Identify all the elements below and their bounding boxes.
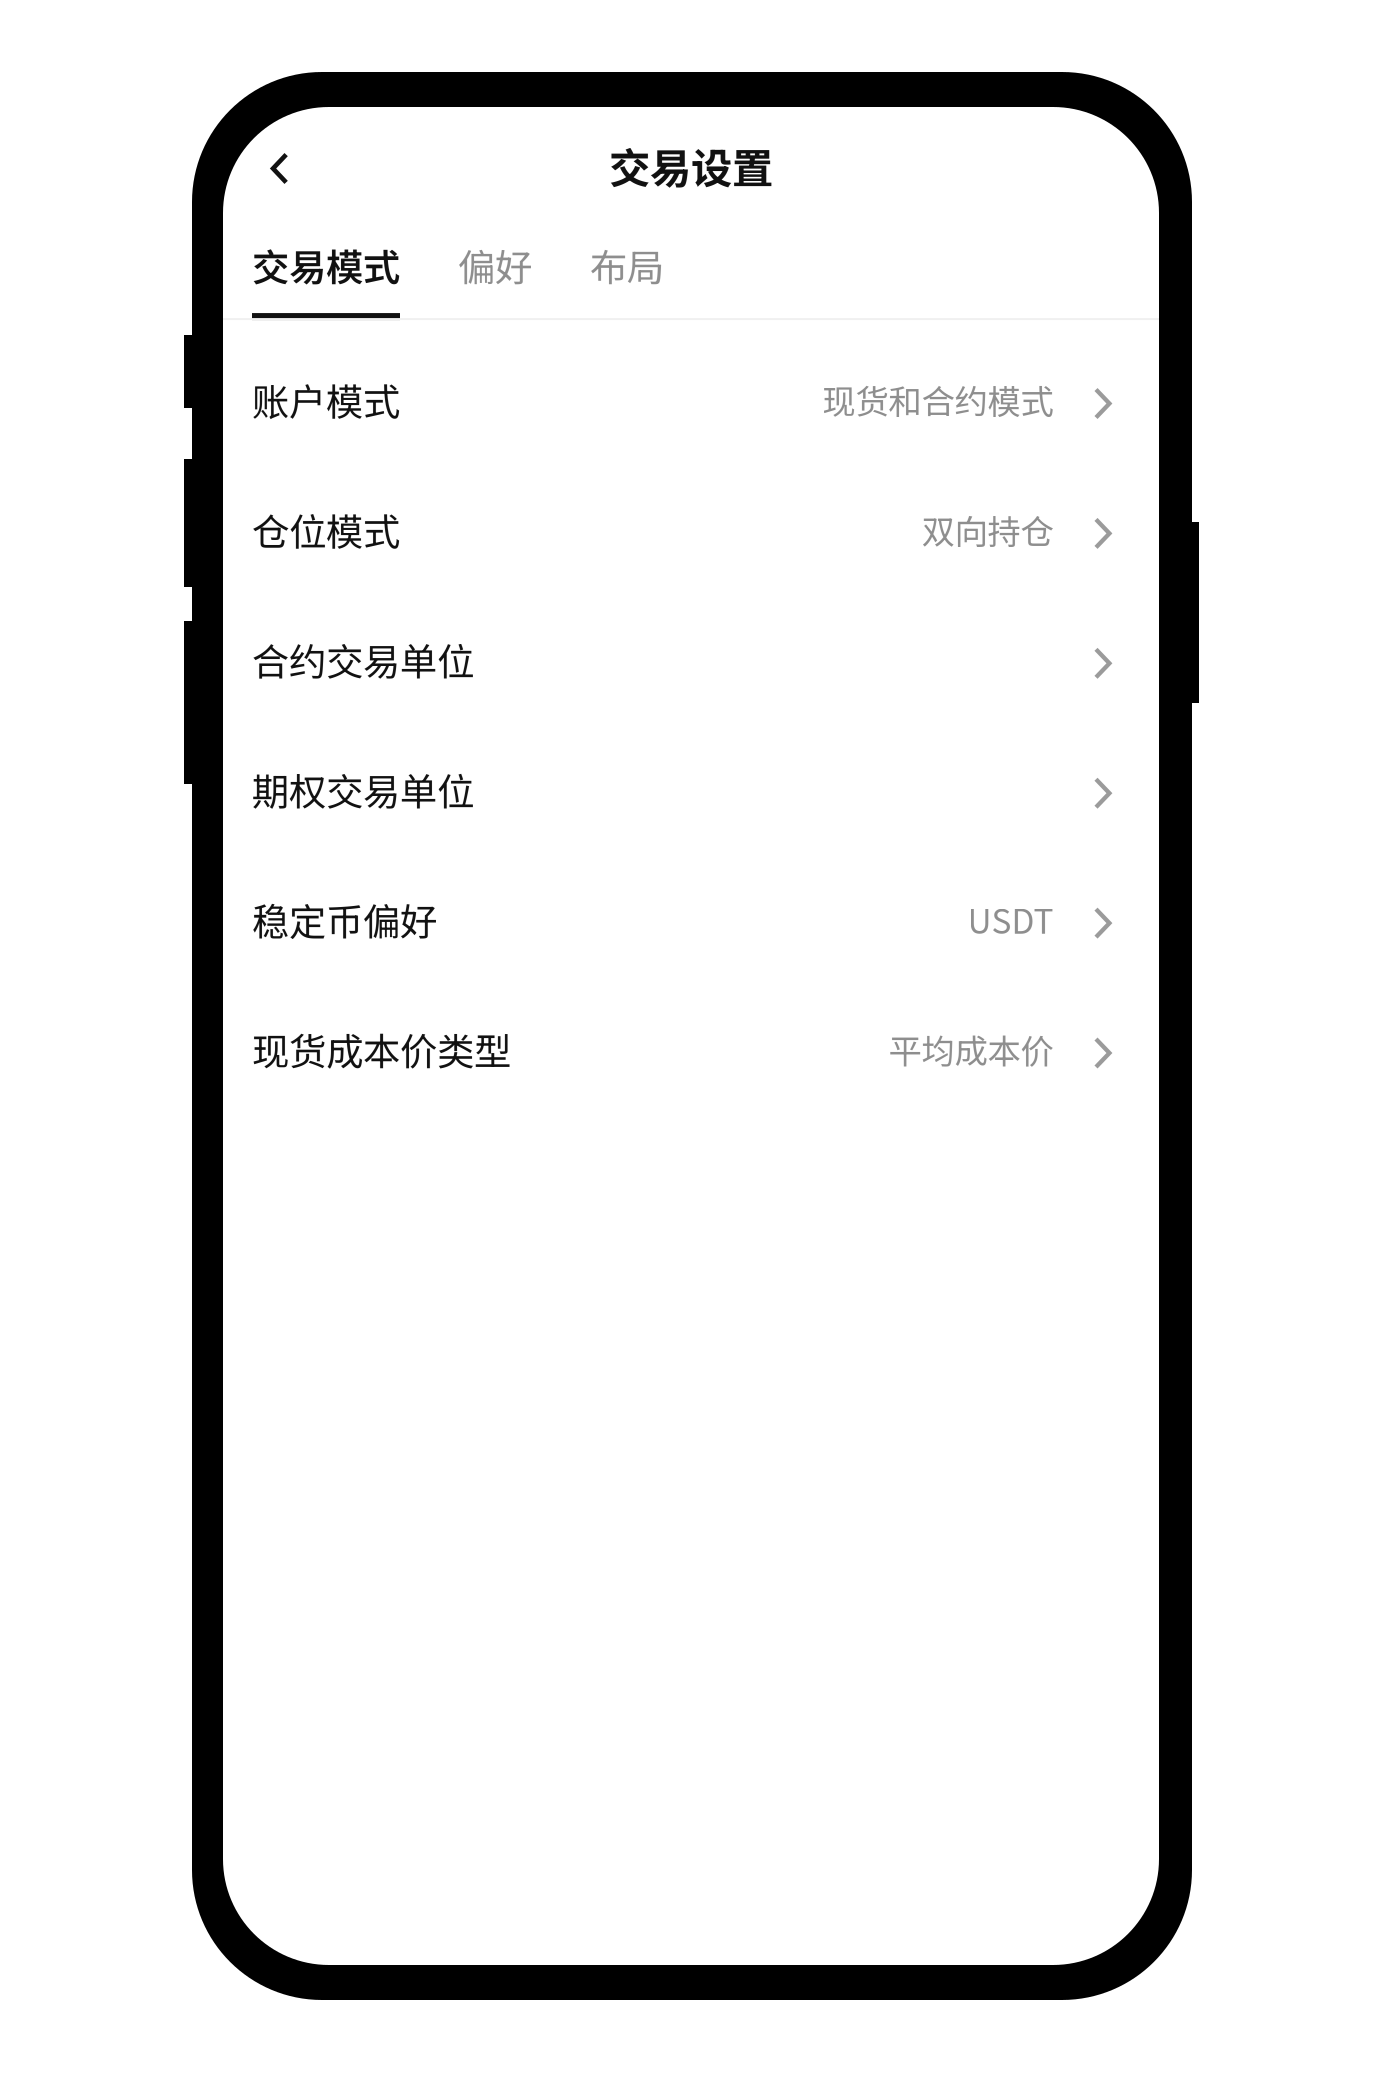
button[interactable]: 稳定币偏好 — [223, 854, 1159, 984]
staticText: 布局 — [590, 238, 664, 292]
staticText: 现货成本价类型 — [252, 1022, 511, 1076]
staticText: USDT — [967, 895, 1053, 943]
staticText: 双向持仓 — [921, 505, 1053, 554]
button[interactable]: 账户模式 — [223, 335, 1159, 464]
staticText: 期权交易单位 — [252, 762, 474, 816]
staticText: 偏好 — [458, 238, 532, 292]
button[interactable]: 现货成本价类型 — [223, 984, 1159, 1114]
staticText: 稳定币偏好 — [252, 892, 437, 946]
staticText: 交易模式 — [252, 238, 400, 292]
staticText: 平均成本价 — [888, 1025, 1053, 1073]
button[interactable]: 交易模式 — [252, 224, 400, 320]
button[interactable]: 布局 — [590, 224, 664, 320]
staticText: 账户模式 — [252, 372, 400, 427]
staticText: 仓位模式 — [252, 502, 400, 556]
staticText: 现货和合约模式 — [822, 375, 1053, 424]
button[interactable]: 仓位模式 — [223, 464, 1159, 594]
staticText: 合约交易单位 — [252, 632, 474, 686]
staticText: 交易设置 — [609, 136, 773, 195]
button[interactable]: 合约交易单位 — [223, 594, 1159, 724]
button[interactable]: 期权交易单位 — [223, 724, 1159, 854]
button[interactable]: 返回 — [243, 129, 315, 201]
button[interactable]: 偏好 — [458, 224, 532, 320]
